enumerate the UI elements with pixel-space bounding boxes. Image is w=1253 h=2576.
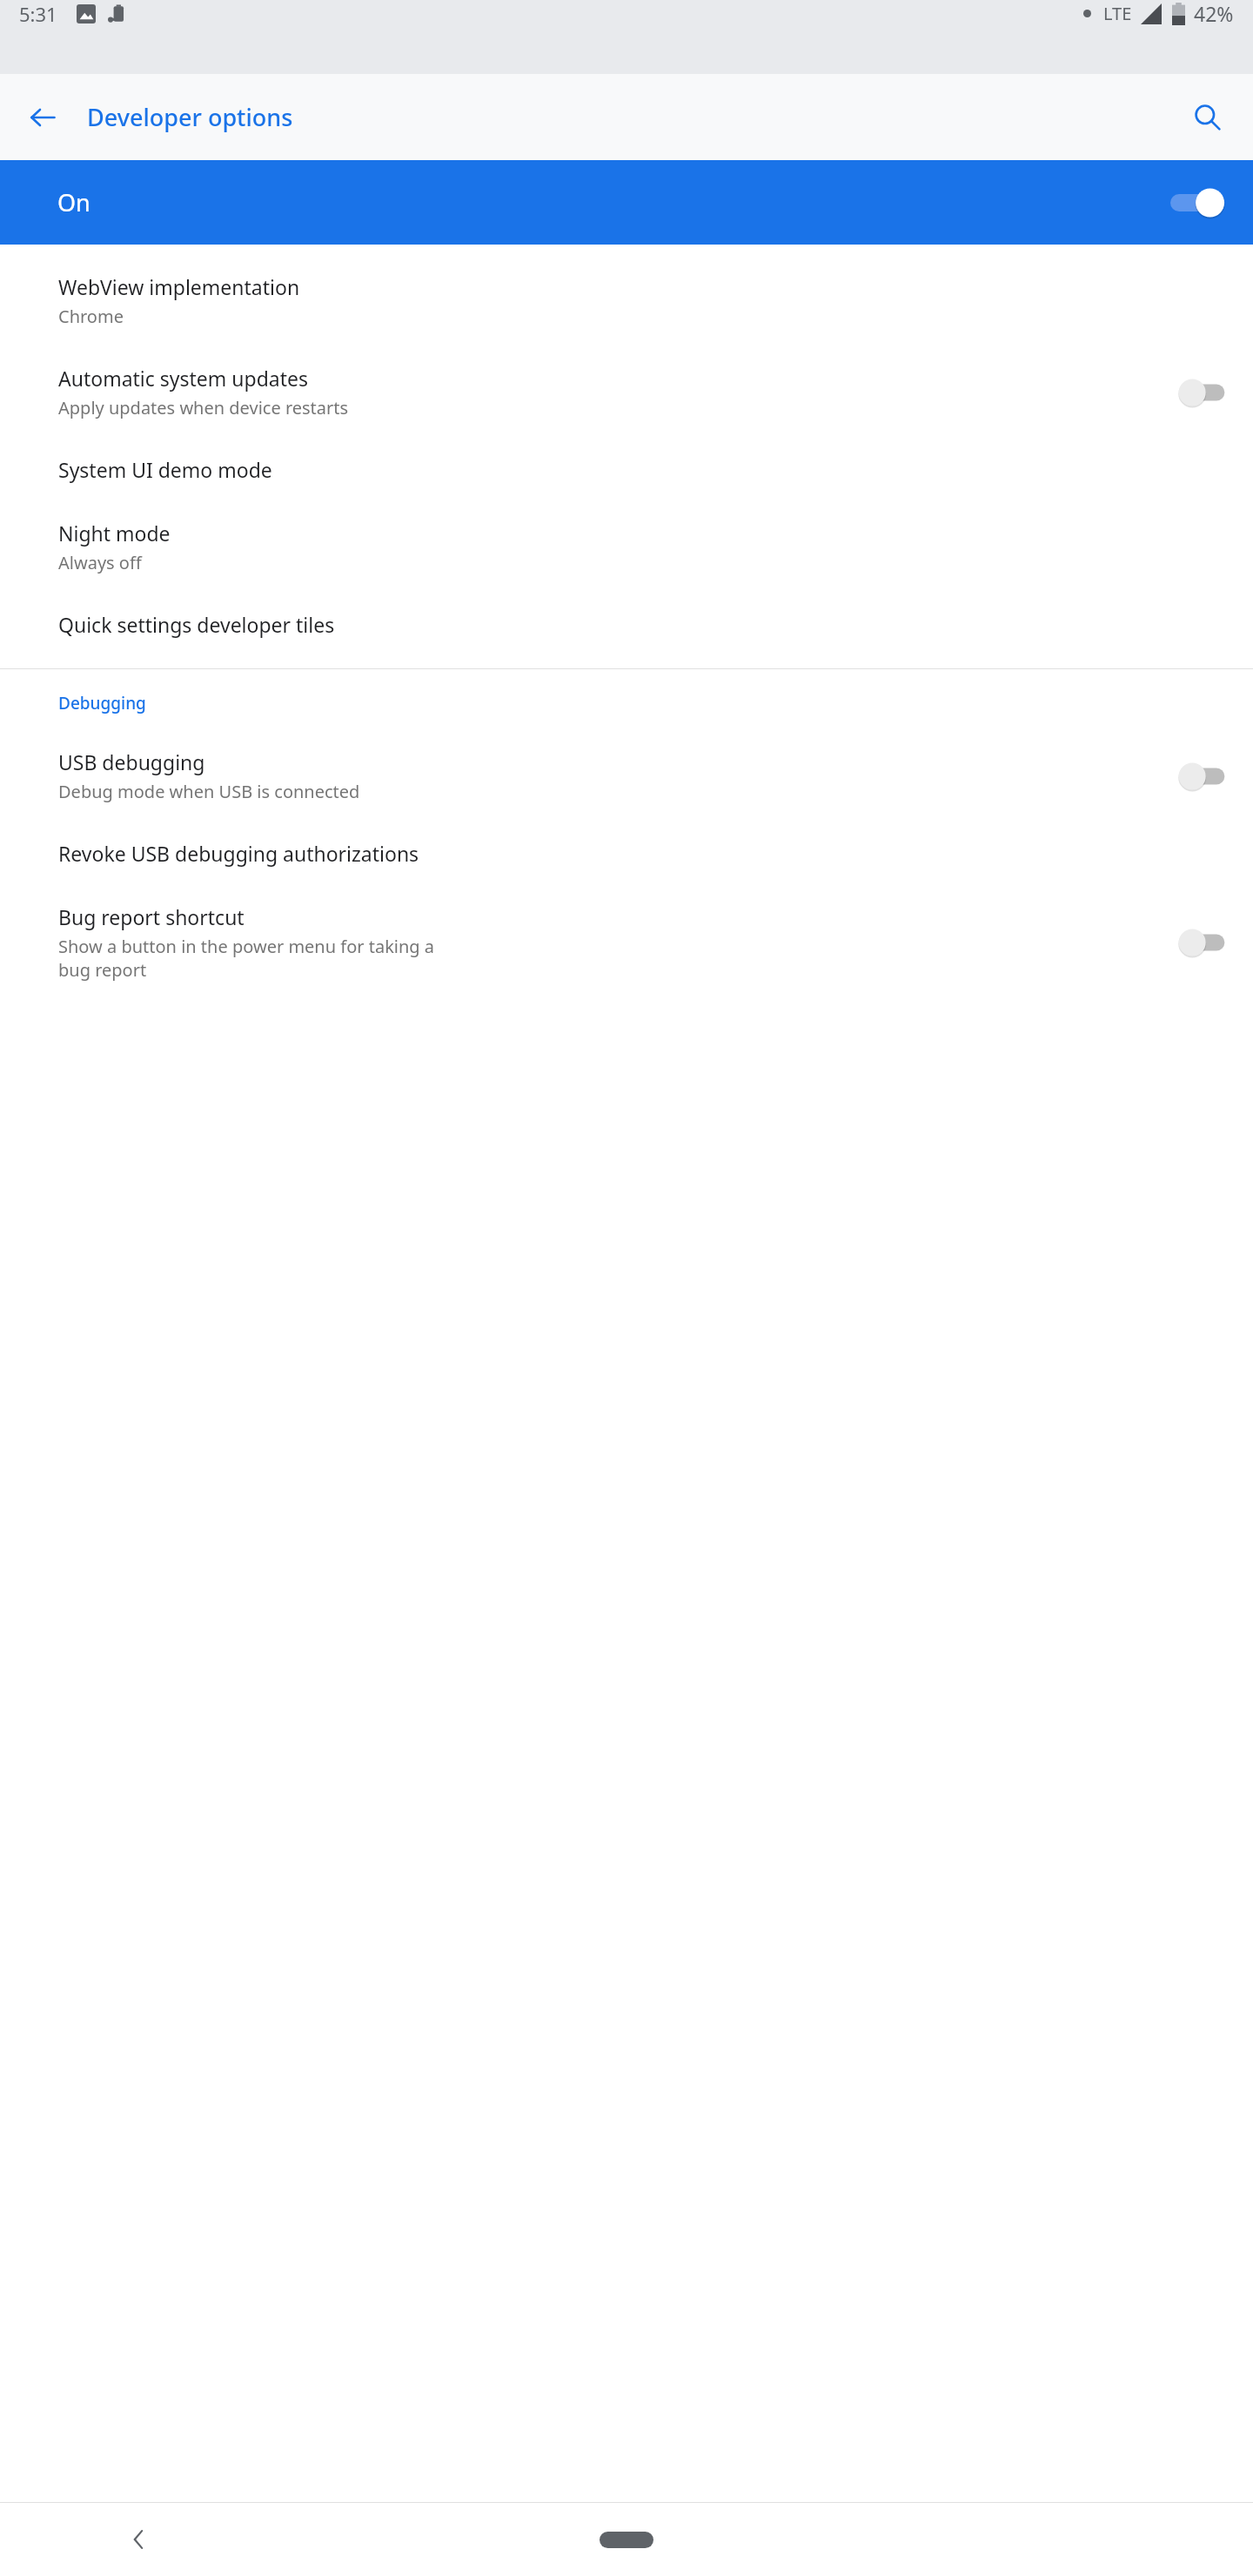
button[interactable]: USB debugging: [0, 730, 1253, 822]
button[interactable]: Quick settings developer tiles: [0, 593, 1253, 656]
staticText: Automatic system updates: [58, 365, 309, 392]
staticText: Quick settings developer tiles: [58, 611, 335, 638]
staticText: Chrome: [58, 305, 124, 328]
staticText: LTE: [1103, 2, 1132, 25]
staticText: Debug mode when USB is connected: [58, 780, 441, 803]
staticText: Revoke USB debugging authorizations: [58, 840, 419, 867]
button[interactable]: Automatic system updates: [0, 346, 1253, 438]
staticText: 42%: [1194, 0, 1234, 27]
button[interactable]: System UI demo mode: [0, 438, 1253, 501]
button[interactable]: Night mode: [0, 501, 1253, 593]
staticText: Always off: [58, 551, 142, 574]
button[interactable]: On: [0, 160, 1253, 245]
staticText: Bug report shortcut: [58, 903, 245, 930]
button[interactable]: WebView implementation: [0, 255, 1253, 346]
button[interactable]: Revoke USB debugging authorizations: [0, 822, 1253, 885]
button[interactable]: Bug report shortcut: [0, 885, 1253, 1000]
staticText: Night mode: [58, 520, 171, 547]
staticText: Developer options: [87, 101, 293, 133]
staticText: Apply updates when device restarts: [58, 396, 349, 419]
button[interactable]: Back: [113, 2513, 165, 2566]
staticText: Show a button in the power menu for taki…: [58, 935, 467, 982]
staticText: 5:31: [19, 1, 57, 27]
staticText: WebView implementation: [58, 273, 300, 300]
button[interactable]: Home: [596, 2522, 657, 2557]
button[interactable]: Back: [12, 87, 73, 148]
staticText: System UI demo mode: [58, 456, 272, 483]
staticText: On: [57, 186, 90, 218]
staticText: Debugging: [58, 692, 146, 714]
staticText: USB debugging: [58, 748, 205, 775]
button[interactable]: Search: [1173, 83, 1243, 152]
